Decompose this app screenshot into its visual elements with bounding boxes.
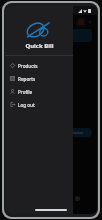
staticText: Quick Bill bbox=[25, 42, 54, 50]
button[interactable]: Profile bbox=[5, 85, 73, 98]
button[interactable]: Reports bbox=[5, 72, 73, 85]
staticText: Products bbox=[18, 63, 38, 69]
button[interactable] bbox=[10, 78, 92, 91]
staticText: New Invoice bbox=[62, 130, 84, 135]
button[interactable]: New Invoice bbox=[54, 128, 92, 137]
button[interactable] bbox=[10, 94, 92, 107]
button[interactable] bbox=[10, 110, 92, 123]
button[interactable]: Log out bbox=[5, 98, 73, 111]
button[interactable] bbox=[10, 62, 92, 75]
button[interactable] bbox=[10, 46, 92, 59]
button[interactable] bbox=[10, 29, 92, 42]
button[interactable]: Profile bbox=[71, 192, 83, 204]
button[interactable]: Products bbox=[5, 59, 73, 72]
staticText: Log out bbox=[18, 102, 35, 108]
button[interactable]: More options bbox=[88, 20, 92, 24]
staticText: Profile bbox=[18, 89, 33, 95]
staticText: Reports bbox=[18, 76, 36, 82]
